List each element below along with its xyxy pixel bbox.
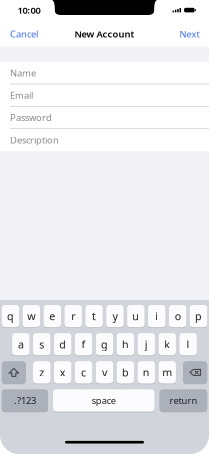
button[interactable]: Shift	[2, 361, 26, 383]
staticText: a	[18, 337, 24, 351]
button[interactable]: l	[179, 333, 197, 355]
button[interactable]: x	[54, 361, 71, 383]
staticText: w	[27, 309, 35, 323]
staticText: Description	[10, 134, 59, 146]
button[interactable]: Cancel	[0, 22, 46, 46]
button[interactable]: e	[43, 305, 61, 327]
button[interactable]: m	[158, 361, 176, 383]
staticText: f	[82, 337, 86, 351]
staticText: r	[71, 309, 75, 323]
staticText: New Account	[74, 28, 134, 40]
staticText: Next	[179, 28, 199, 40]
button[interactable]: k	[158, 333, 176, 355]
staticText: return	[169, 394, 197, 407]
staticText: l	[187, 337, 190, 351]
staticText: o	[175, 309, 181, 323]
staticText: s	[39, 337, 44, 351]
button[interactable]: w	[23, 305, 40, 327]
staticText: 10:00	[17, 4, 40, 16]
staticText: e	[49, 309, 55, 323]
staticText: d	[59, 337, 66, 351]
staticText: k	[164, 337, 170, 351]
button[interactable]: t	[85, 305, 103, 327]
staticText: p	[195, 309, 202, 323]
button[interactable]: b	[117, 361, 134, 383]
button[interactable]: a	[12, 333, 30, 355]
button[interactable]: h	[117, 333, 134, 355]
staticText: g	[101, 337, 108, 351]
staticText: c	[81, 365, 86, 379]
button[interactable]: r	[64, 305, 82, 327]
staticText: t	[92, 309, 96, 323]
staticText: b	[122, 365, 129, 379]
staticText: z	[39, 365, 44, 379]
button[interactable]: y	[106, 305, 124, 327]
button[interactable]: j	[138, 333, 155, 355]
button[interactable]: g	[96, 333, 113, 355]
button[interactable]: Delete	[183, 361, 207, 383]
staticText: v	[102, 365, 107, 379]
staticText: m	[162, 365, 172, 379]
staticText: Email	[10, 89, 33, 101]
staticText: x	[60, 365, 66, 379]
button[interactable]: space	[53, 389, 155, 412]
button[interactable]: p	[190, 305, 207, 327]
button[interactable]: Next	[171, 22, 209, 46]
button[interactable]: .?123	[2, 389, 48, 412]
button[interactable]: s	[33, 333, 51, 355]
staticText: Name	[10, 67, 36, 79]
button[interactable]: return	[160, 389, 207, 412]
button[interactable]: i	[148, 305, 165, 327]
staticText: j	[145, 337, 148, 351]
button[interactable]: c	[75, 361, 92, 383]
button[interactable]: z	[33, 361, 50, 383]
staticText: q	[7, 309, 14, 323]
staticText: .?123	[14, 394, 36, 407]
button[interactable]: v	[96, 361, 113, 383]
button[interactable]: f	[75, 333, 92, 355]
staticText: h	[122, 337, 129, 351]
button[interactable]: o	[169, 305, 186, 327]
staticText: Password	[10, 111, 52, 124]
staticText: n	[143, 365, 150, 379]
staticText: u	[132, 309, 139, 323]
staticText: space	[92, 394, 116, 407]
staticText: y	[112, 309, 117, 323]
button[interactable]: u	[127, 305, 145, 327]
staticText: i	[155, 309, 158, 323]
button[interactable]: n	[137, 361, 155, 383]
button[interactable]: d	[54, 333, 71, 355]
button[interactable]: q	[2, 305, 19, 327]
staticText: Cancel	[10, 28, 38, 40]
